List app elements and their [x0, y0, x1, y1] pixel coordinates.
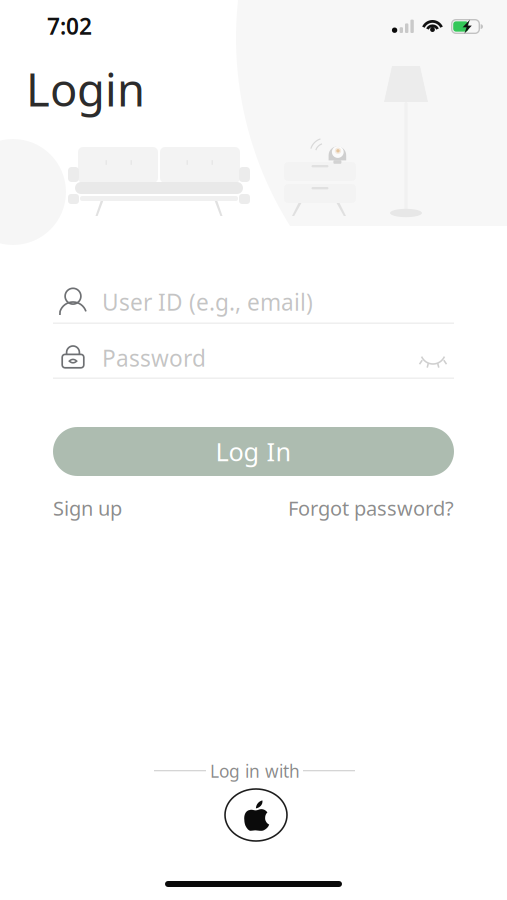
button[interactable]: Log In — [53, 427, 454, 476]
button[interactable]: Forgot password? — [288, 495, 454, 521]
staticText: User ID (e.g., email) — [102, 287, 313, 317]
staticText: Forgot password? — [288, 495, 454, 521]
staticText: 7:02 — [47, 11, 92, 41]
staticText: Sign up — [53, 495, 122, 521]
staticText: Login — [26, 59, 145, 119]
button[interactable]: Sign up — [53, 495, 122, 521]
button[interactable]: Log in with Apple — [224, 788, 288, 842]
staticText: Log In — [215, 435, 291, 468]
staticText: Log in with — [210, 759, 300, 782]
staticText: Password — [102, 343, 206, 373]
